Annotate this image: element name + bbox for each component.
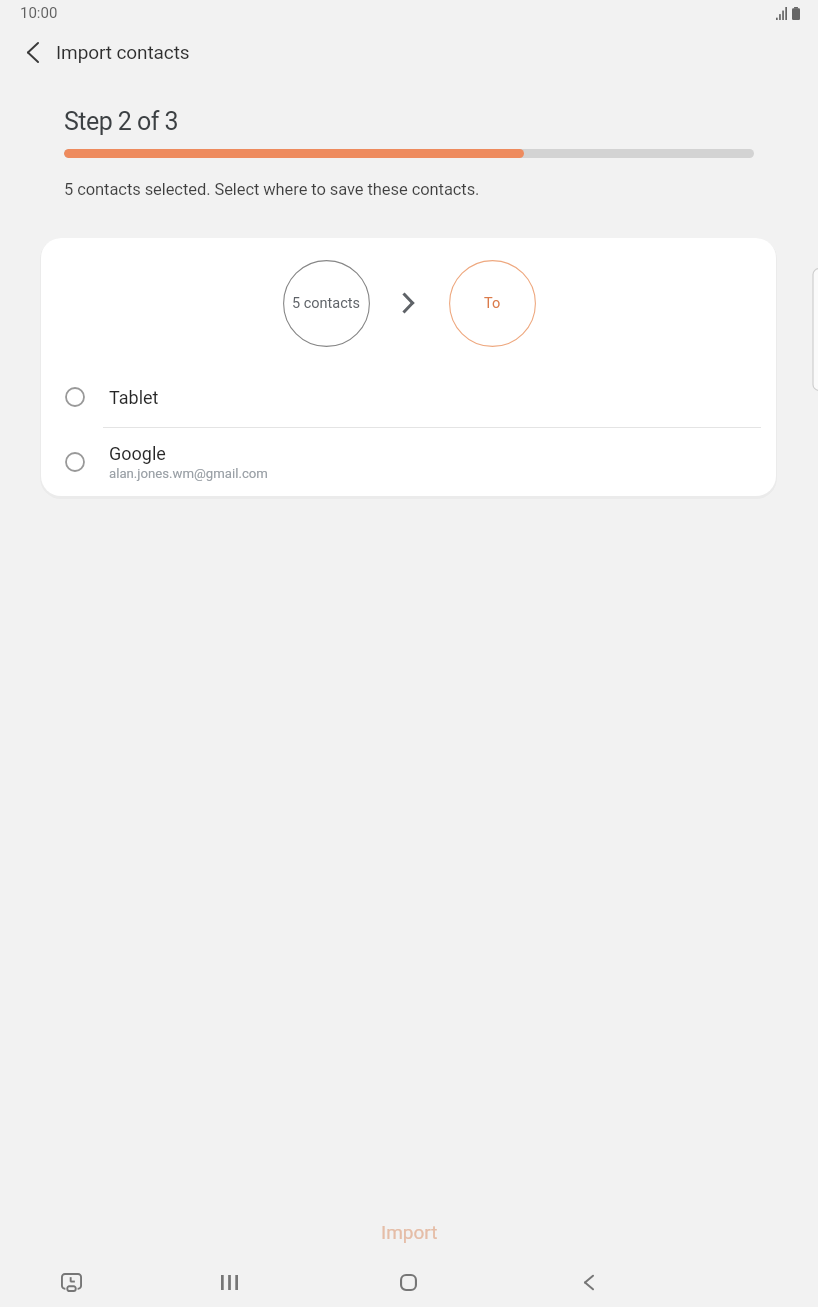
staticText: alan.jones.wm@gmail.com [109,466,268,481]
staticText: Step 2 of 3 [64,107,178,136]
button[interactable]: Tablet [41,368,776,426]
staticText: 5 contacts selected. Select where to sav… [64,180,480,199]
staticText: To [484,295,501,312]
button[interactable]: Screenshot [45,1257,97,1307]
staticText: Import contacts [56,41,190,63]
button[interactable]: Recent apps [203,1257,255,1307]
staticText: 10:00 [20,4,58,22]
button[interactable]: Home [382,1257,434,1307]
staticText: Google [109,443,166,464]
button[interactable]: Google [41,427,776,496]
button[interactable]: Back [563,1257,615,1307]
staticText: Tablet [109,387,159,408]
button[interactable]: Back [7,26,59,78]
staticText: 5 contacts [292,295,361,312]
button[interactable]: Import [0,1207,818,1257]
staticText: Import [381,1221,438,1243]
